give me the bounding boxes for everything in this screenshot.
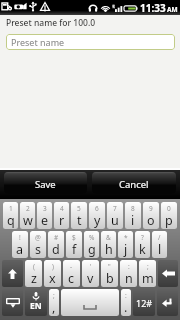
staticText: o — [147, 212, 155, 229]
staticText: q — [7, 212, 15, 229]
staticText: ? — [141, 233, 144, 242]
button[interactable]: : — [120, 260, 137, 287]
staticText: u — [111, 212, 119, 229]
staticText: i — [131, 212, 135, 229]
button[interactable]: ; — [49, 289, 59, 316]
staticText: Cancel — [119, 178, 149, 191]
staticText: Save — [35, 178, 56, 191]
button[interactable]: : — [121, 289, 131, 316]
staticText: 2 — [26, 204, 30, 213]
staticText: Preset name — [11, 36, 65, 48]
button[interactable]: ( — [25, 260, 42, 287]
button[interactable]: 3 — [37, 202, 52, 229]
staticText: 12# — [136, 297, 153, 309]
staticText: 9 — [149, 204, 153, 213]
staticText: ; — [53, 291, 55, 300]
staticText: m — [142, 270, 154, 287]
staticText: ! — [19, 233, 21, 242]
staticText: n — [125, 270, 133, 287]
staticText: $ — [72, 233, 76, 242]
button[interactable]: & — [101, 231, 116, 258]
button[interactable]: 2 — [20, 202, 35, 229]
button[interactable]: 0 — [161, 202, 177, 229]
button[interactable]: ; — [139, 260, 156, 287]
staticText: AM — [167, 5, 178, 14]
button[interactable]: Preset name — [6, 34, 175, 50]
staticText: @ — [35, 233, 41, 242]
button[interactable]: 7 — [107, 202, 123, 229]
button[interactable]: Backspace — [158, 260, 178, 287]
button[interactable]: Shift — [2, 260, 23, 287]
staticText: 1 — [9, 204, 13, 213]
staticText: v — [87, 270, 94, 287]
staticText: p — [165, 212, 173, 229]
button[interactable]: Cancel — [92, 172, 176, 194]
button[interactable]: ? — [135, 231, 150, 258]
staticText: 3 — [43, 204, 47, 213]
staticText: 4 — [60, 204, 64, 213]
staticText: 7 — [113, 204, 117, 213]
staticText: b — [106, 270, 114, 287]
staticText: ; — [147, 262, 149, 271]
staticText: ( — [33, 262, 35, 271]
staticText: g — [88, 241, 96, 258]
button[interactable]: Save — [4, 172, 87, 194]
staticText: & — [106, 233, 111, 242]
staticText: k — [139, 241, 146, 258]
staticText: : — [125, 291, 127, 300]
button[interactable]: 9 — [143, 202, 159, 229]
button[interactable]: * — [118, 231, 133, 258]
staticText: ' — [90, 262, 92, 271]
staticText: y — [94, 212, 101, 229]
button[interactable]: # — [48, 231, 64, 258]
button[interactable]: Keyboard settings — [2, 289, 23, 316]
button[interactable]: % — [84, 231, 99, 258]
staticText: s — [35, 241, 41, 258]
staticText: : — [128, 262, 130, 271]
button[interactable]: 8 — [125, 202, 141, 229]
button[interactable]: 4 — [54, 202, 69, 229]
staticText: % — [89, 233, 95, 242]
staticText: * — [124, 233, 128, 242]
staticText: t — [77, 212, 82, 229]
button[interactable]: ) — [44, 260, 61, 287]
staticText: EN — [30, 300, 42, 312]
staticText: a — [16, 241, 24, 258]
button[interactable]: Symbols — [133, 289, 155, 316]
staticText: w — [23, 212, 33, 229]
staticText: / — [158, 233, 161, 242]
staticText: h — [105, 241, 113, 258]
staticText: " — [108, 262, 111, 271]
staticText: ) — [52, 262, 54, 271]
button[interactable] — [61, 289, 119, 316]
button[interactable]: / — [152, 231, 167, 258]
button[interactable]: " — [101, 260, 118, 287]
staticText: x — [49, 270, 56, 287]
staticText: j — [124, 241, 128, 258]
button[interactable]: Voice input EN — [25, 289, 47, 316]
staticText: 11:33 — [140, 1, 166, 15]
button[interactable]: ' — [82, 260, 99, 287]
staticText: d — [52, 241, 60, 258]
button[interactable]: Enter — [157, 289, 178, 316]
staticText: 6 — [95, 204, 99, 213]
staticText: 5 — [77, 204, 81, 213]
button[interactable]: @ — [30, 231, 46, 258]
staticText: 0 — [167, 204, 171, 213]
staticText: . — [124, 299, 128, 316]
staticText: Preset name for 100.0 — [6, 17, 96, 29]
staticText: - — [70, 262, 73, 271]
staticText: 8 — [131, 204, 135, 213]
staticText: f — [72, 241, 77, 258]
staticText: # — [54, 233, 59, 242]
button[interactable]: $ — [66, 231, 82, 258]
button[interactable]: ! — [12, 231, 28, 258]
button[interactable]: 1 — [3, 202, 18, 229]
staticText: r — [59, 212, 65, 229]
button[interactable]: 5 — [71, 202, 87, 229]
staticText: , — [52, 299, 56, 316]
button[interactable]: - — [63, 260, 80, 287]
staticText: z — [31, 270, 37, 287]
staticText: l — [158, 241, 162, 258]
button[interactable]: 6 — [89, 202, 105, 229]
